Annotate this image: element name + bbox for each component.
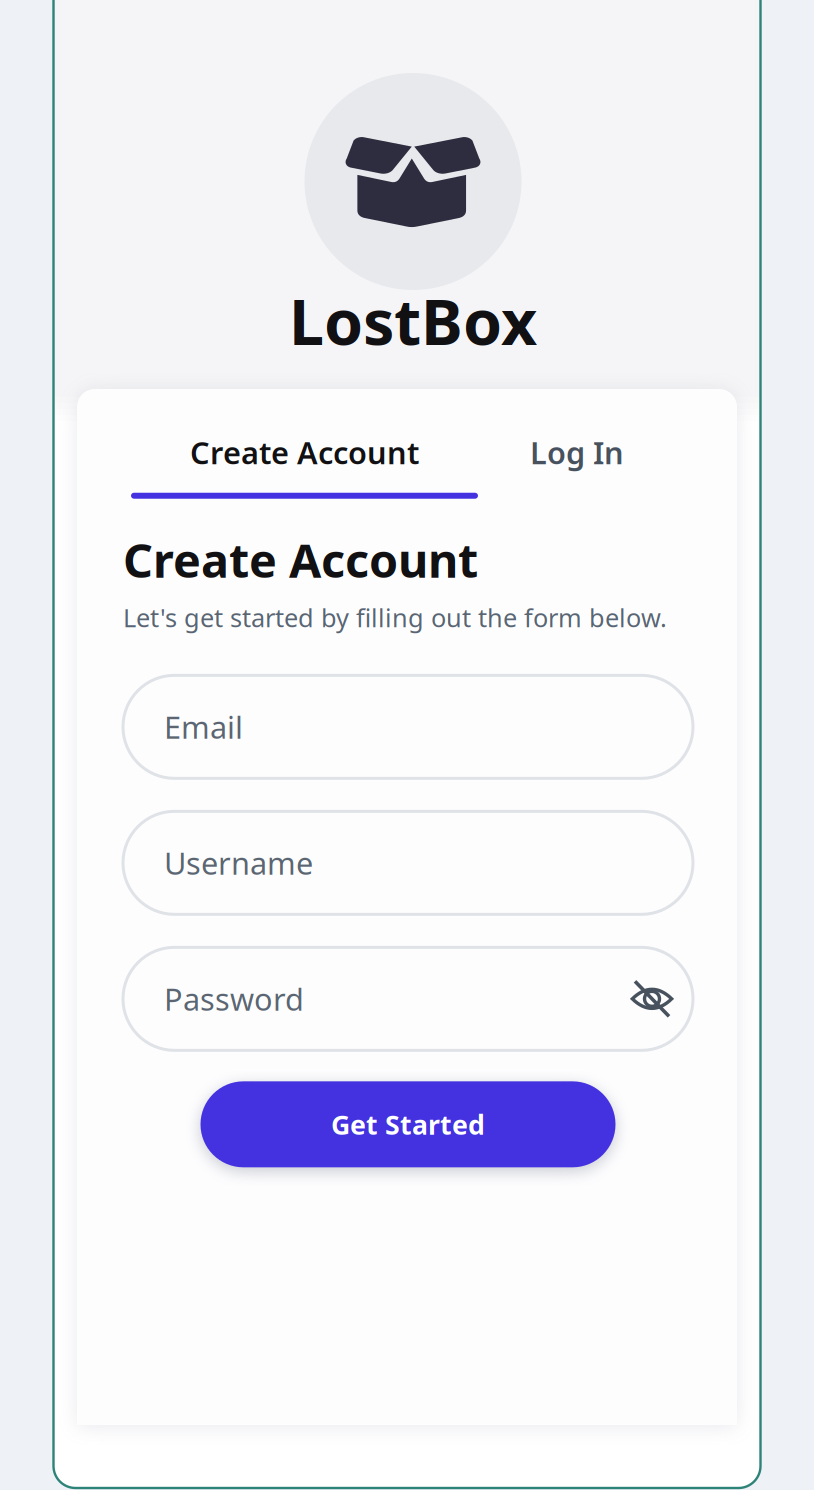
staticText: Let's get started by filling out the for… [123, 601, 667, 634]
staticText: Create Account [190, 432, 419, 473]
staticText: Create Account [123, 529, 478, 591]
staticText: Email [164, 706, 243, 747]
button[interactable]: Log In [478, 389, 676, 499]
button[interactable]: Create Account [131, 389, 478, 499]
staticText: Username [164, 842, 313, 883]
button[interactable]: Show password [624, 971, 680, 1027]
button[interactable]: Get Started [200, 1081, 615, 1167]
staticText: Password [164, 978, 304, 1019]
staticText: LostBox [289, 279, 537, 362]
staticText: Get Started [331, 1107, 485, 1142]
staticText: Log In [530, 432, 624, 473]
